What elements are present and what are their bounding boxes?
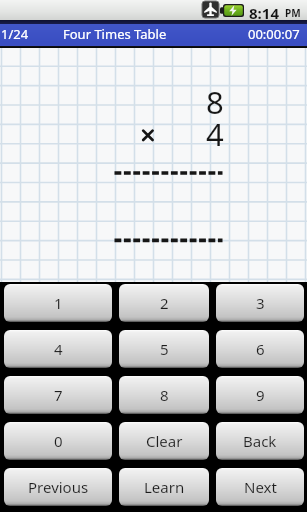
button[interactable]: 7	[4, 376, 112, 414]
staticText: Next	[244, 477, 277, 497]
staticText: Four Times Table	[63, 25, 167, 43]
button[interactable]: Next	[216, 468, 304, 506]
button[interactable]: 8	[119, 376, 209, 414]
button[interactable]: 3	[216, 284, 304, 322]
staticText: 4	[54, 339, 63, 359]
button[interactable]: 2	[119, 284, 209, 322]
button[interactable]: Back	[216, 422, 304, 460]
staticText: 3	[256, 293, 265, 313]
staticText: 4	[206, 113, 224, 155]
staticText: Back	[243, 431, 277, 451]
button[interactable]: Clear	[119, 422, 209, 460]
button[interactable]: 1	[4, 284, 112, 322]
button[interactable]: 5	[119, 330, 209, 368]
staticText: 1/24	[1, 25, 29, 43]
button[interactable]: Learn	[119, 468, 209, 506]
staticText: 2	[160, 293, 169, 313]
staticText: 00:00:07	[248, 25, 300, 43]
staticText: 1	[54, 293, 63, 313]
button[interactable]: Previous	[4, 468, 112, 506]
staticText: Previous	[28, 477, 89, 497]
staticText: Clear	[146, 431, 183, 451]
button[interactable]: 6	[216, 330, 304, 368]
staticText: 9	[256, 385, 265, 405]
staticText: 8	[160, 385, 169, 405]
staticText: Learn	[144, 477, 185, 497]
button[interactable]: 4	[4, 330, 112, 368]
button[interactable]: 0	[4, 422, 112, 460]
button[interactable]: 9	[216, 376, 304, 414]
staticText: 6	[256, 339, 265, 359]
staticText: 0	[54, 431, 63, 451]
staticText: 8:14	[249, 3, 279, 23]
staticText: 5	[160, 339, 169, 359]
staticText: 7	[54, 385, 63, 405]
staticText: 8	[206, 81, 224, 123]
staticText: PM	[285, 6, 301, 20]
